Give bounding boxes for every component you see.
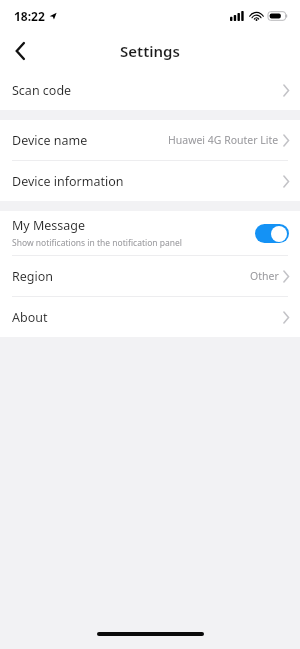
staticText: 18:22 [14, 8, 45, 24]
button[interactable]: Device information [0, 161, 300, 201]
button[interactable]: My Message [0, 211, 300, 255]
button[interactable]: Back [0, 32, 40, 70]
staticText: Huawei 4G Router Lite [168, 133, 279, 147]
button[interactable]: About [0, 297, 300, 337]
staticText: Region [12, 268, 54, 285]
staticText: Settings [120, 41, 180, 61]
staticText: Device name [12, 132, 88, 149]
button[interactable]: Device name [0, 120, 300, 160]
staticText: Scan code [12, 82, 72, 99]
staticText: Device information [12, 173, 124, 190]
staticText: Show notifications in the notification p… [12, 237, 183, 249]
button[interactable]: Region [0, 256, 300, 296]
staticText: About [12, 309, 48, 326]
button[interactable]: Scan code [0, 70, 300, 110]
staticText: My Message [12, 217, 86, 234]
button[interactable]: My Message toggle, on [255, 224, 289, 243]
staticText: Other [250, 269, 279, 283]
